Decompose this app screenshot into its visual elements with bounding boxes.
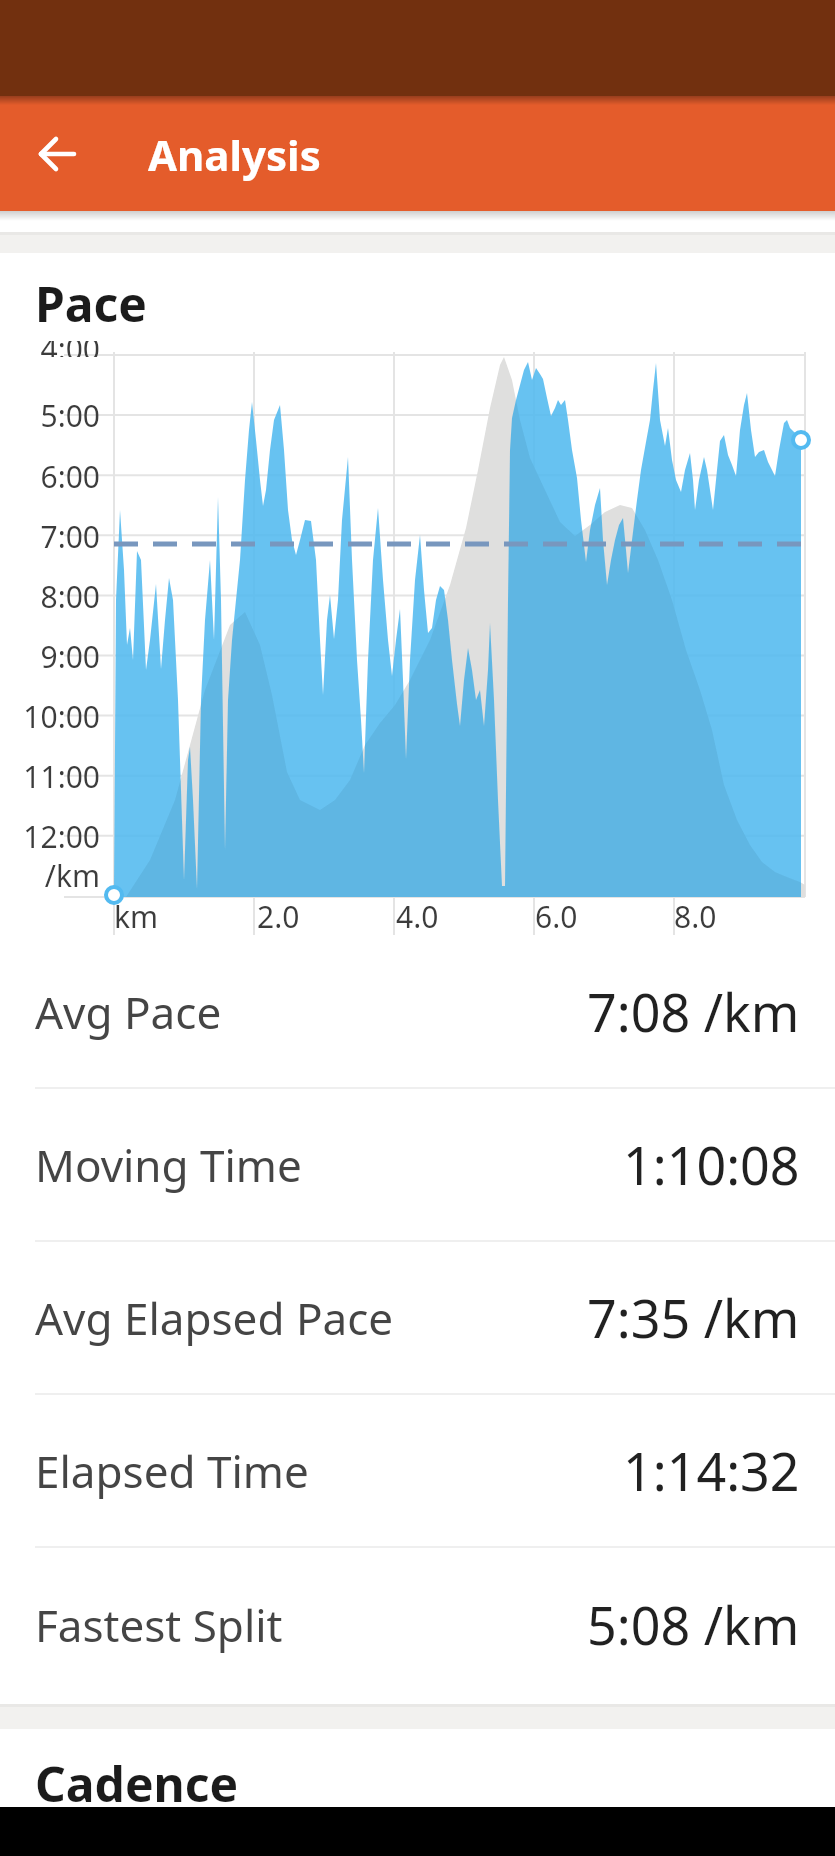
staticText: km <box>114 896 159 937</box>
staticText: Moving Time <box>35 1135 302 1195</box>
staticText: 1:14:32 <box>623 1435 800 1506</box>
staticText: 6.0 <box>535 896 578 937</box>
staticText: Pace <box>35 271 147 336</box>
staticText: Fastest Split <box>35 1595 283 1655</box>
staticText: 7:00 <box>40 516 100 557</box>
staticText: Analysis <box>148 126 321 183</box>
button[interactable]: Avg Pace <box>0 936 835 1089</box>
staticText: 7:35 /km <box>587 1282 800 1353</box>
staticText: Elapsed Time <box>35 1441 309 1501</box>
staticText: 4:00 <box>20 341 100 357</box>
button[interactable]: Avg Elapsed Pace <box>0 1242 835 1395</box>
staticText: 8.0 <box>674 896 717 937</box>
staticText: 1:10:08 <box>623 1129 800 1200</box>
staticText: Cadence <box>35 1751 239 1816</box>
staticText: 4.0 <box>396 896 439 937</box>
staticText: 6:00 <box>40 456 100 497</box>
staticText: /km <box>44 855 100 896</box>
button[interactable]: Moving Time <box>0 1089 835 1242</box>
button[interactable]: Elapsed Time <box>0 1395 835 1548</box>
staticText: 11:00 <box>23 756 100 797</box>
staticText: 10:00 <box>23 696 100 737</box>
staticText: 9:00 <box>40 636 100 677</box>
button[interactable] <box>25 121 91 187</box>
staticText: 12:00 <box>23 816 100 857</box>
staticText: Avg Elapsed Pace <box>35 1288 394 1348</box>
staticText: 8:00 <box>40 576 100 617</box>
staticText: 5:08 /km <box>587 1589 800 1660</box>
staticText: Avg Pace <box>35 982 222 1042</box>
staticText: 5:00 <box>40 395 100 436</box>
button[interactable]: Fastest Split <box>0 1548 835 1701</box>
staticText: 7:08 /km <box>587 976 800 1047</box>
staticText: 2.0 <box>257 896 300 937</box>
